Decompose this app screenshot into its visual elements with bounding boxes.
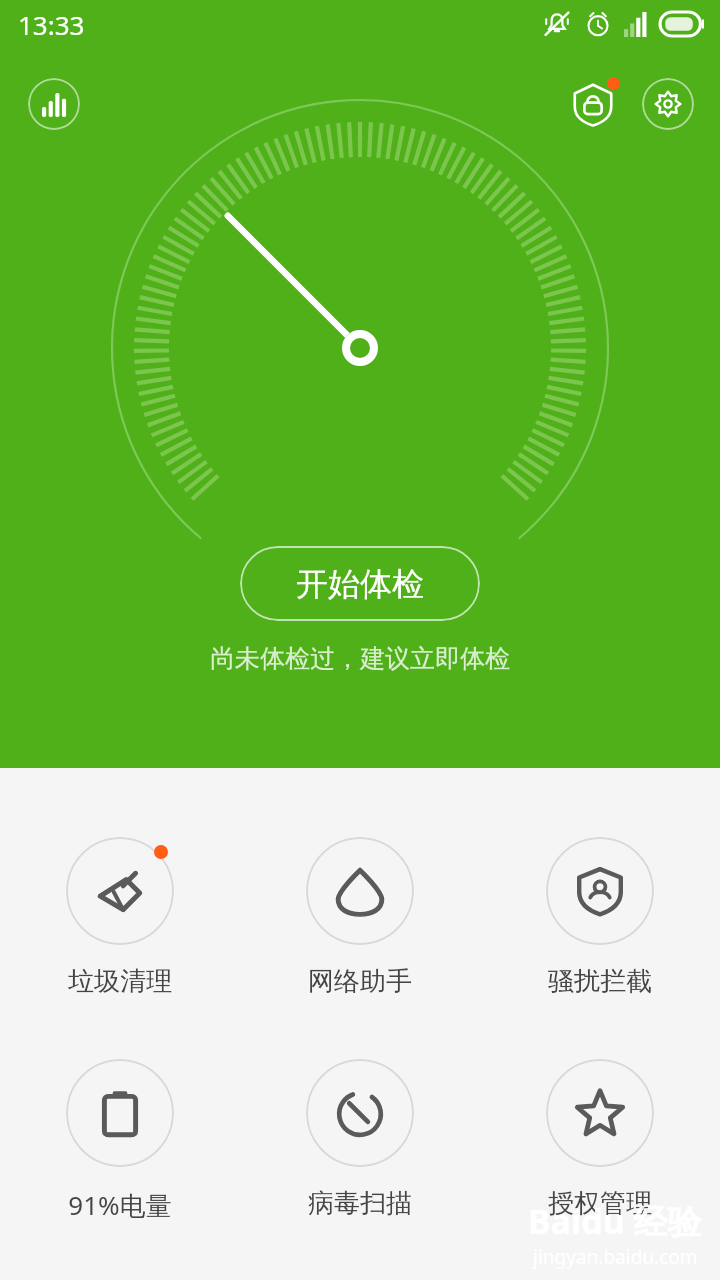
button[interactable]: 开始体检 (240, 546, 480, 621)
staticText: 网络助手 (308, 965, 412, 998)
button[interactable]: 授权管理 (480, 1053, 720, 1220)
staticText: 病毒扫描 (308, 1187, 412, 1220)
staticText: 开始体检 (296, 564, 424, 604)
button[interactable]: Usage statistics (28, 78, 80, 130)
button[interactable]: Settings (642, 78, 694, 130)
staticText: 垃圾清理 (68, 965, 172, 998)
staticText: 91%电量 (68, 1187, 172, 1223)
staticText: 授权管理 (548, 1187, 652, 1220)
button[interactable]: 网络助手 (240, 831, 480, 998)
staticText: Baidu 经验 (528, 1198, 702, 1244)
staticText: jingyan.baidu.com (533, 1244, 698, 1270)
staticText: 骚扰拦截 (548, 965, 652, 998)
button[interactable]: 垃圾清理 (0, 831, 240, 998)
button[interactable]: 91%电量 (0, 1053, 240, 1223)
staticText: 13:33 (18, 7, 85, 42)
staticText: 尚未体检过，建议立即体检 (210, 643, 510, 674)
button[interactable]: 骚扰拦截 (480, 831, 720, 998)
button[interactable]: 病毒扫描 (240, 1053, 480, 1220)
button[interactable]: Security (562, 73, 624, 135)
